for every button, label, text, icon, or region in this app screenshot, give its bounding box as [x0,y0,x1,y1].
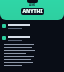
button[interactable] [0,20,64,32]
button[interactable] [0,32,64,44]
staticText: ASK [29,3,35,7]
staticText: ANYTHING [21,8,44,15]
